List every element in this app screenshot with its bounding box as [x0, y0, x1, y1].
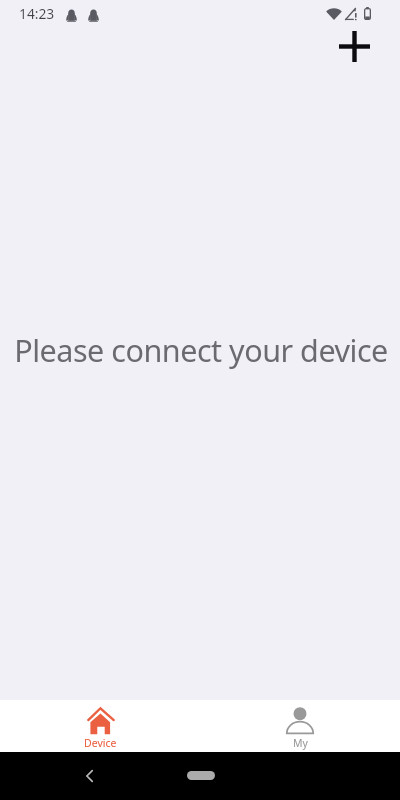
button[interactable]: Add device	[331, 23, 377, 69]
staticText: 14:23	[19, 4, 55, 23]
button[interactable]: My	[200, 700, 400, 752]
staticText: My	[293, 736, 308, 750]
staticText: Device	[84, 736, 117, 750]
button[interactable]: Device	[0, 700, 200, 752]
button[interactable]: Home	[187, 771, 215, 780]
staticText: Please connect your device	[1, 329, 400, 371]
button[interactable]: Back	[76, 762, 104, 790]
